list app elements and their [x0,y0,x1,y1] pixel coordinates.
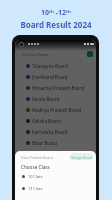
button[interactable]: Himachal Pradesh Board [15,82,96,93]
button[interactable]: Jharkhand Board [15,71,96,82]
button[interactable]: Madhya Pradesh Board [15,104,96,115]
staticText: Jharkhand Board [32,74,68,80]
staticText: Odisha Board [32,118,61,124]
staticText: Telangana Board [32,63,68,69]
staticText: 12 Class [28,186,43,191]
button[interactable]: 12 Class [21,186,93,191]
button[interactable]: 10 Class [21,174,93,179]
staticText: 10 Class [28,174,43,179]
staticText: 10ᵗʰ -12ᵗʰ [41,8,71,18]
staticText: Karnataka Board [32,129,68,135]
staticText: Kerala Board [32,96,60,102]
staticText: Himachal Pradesh Board [32,85,85,91]
staticText: Madhya Pradesh Board [32,107,82,113]
button[interactable]: Kerala Board [15,93,96,104]
button[interactable]: Karnataka Board [15,126,96,137]
button[interactable]: Odisha Board [15,115,96,126]
button[interactable]: Bihar Board [15,137,96,148]
staticText: Bihar Board [32,140,58,146]
button[interactable]: Change Board [70,153,93,160]
staticText: Choose Class [21,164,50,170]
button[interactable]: Telangana Board [15,60,96,71]
button[interactable]: Filter [87,51,93,57]
staticText: Choose Board [22,52,49,57]
staticText: Board Result 2024 [20,19,92,30]
staticText: Uttar Pradesh Board [21,155,53,159]
staticText: Change Board [70,155,93,159]
